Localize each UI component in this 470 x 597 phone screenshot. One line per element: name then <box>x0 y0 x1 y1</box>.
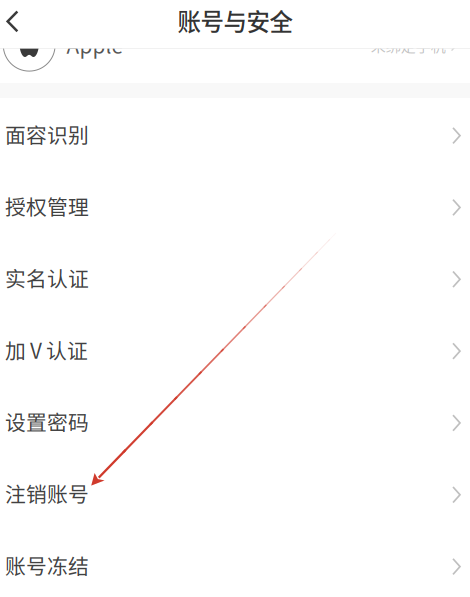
button[interactable]: 加 V 认证 <box>0 314 470 385</box>
button[interactable]: 实名认证 <box>0 242 470 314</box>
staticText: 未绑定手机 <box>371 34 446 56</box>
staticText: 设置密码 <box>5 406 89 436</box>
staticText: 注销账号 <box>5 478 89 508</box>
staticText: 实名认证 <box>5 263 89 293</box>
button[interactable]: Back <box>0 0 28 49</box>
button[interactable]: 设置密码 <box>0 385 470 457</box>
staticText: 面容识别 <box>5 119 89 149</box>
staticText: 授权管理 <box>5 191 89 221</box>
staticText: 账号与安全 <box>177 4 292 38</box>
staticText: 加 V 认证 <box>5 334 88 365</box>
button[interactable]: Apple <box>0 0 470 83</box>
button[interactable]: 授权管理 <box>0 170 470 242</box>
staticText: Apple <box>66 29 123 60</box>
button[interactable]: 面容识别 <box>0 98 470 170</box>
staticText: 账号冻结 <box>5 550 89 580</box>
button[interactable]: 注销账号 <box>0 457 470 529</box>
button[interactable]: 账号冻结 <box>0 529 470 597</box>
